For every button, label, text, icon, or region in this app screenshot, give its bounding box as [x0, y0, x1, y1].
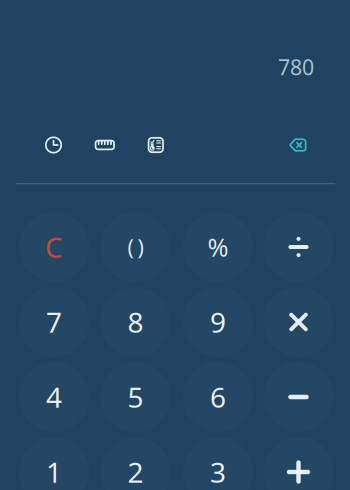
staticText: 7	[46, 303, 62, 341]
staticText: 6	[210, 378, 226, 416]
button[interactable]: 7	[19, 287, 89, 357]
button[interactable]: C	[19, 212, 89, 282]
staticText: 3	[210, 453, 226, 490]
button[interactable]: Multiply	[263, 287, 333, 357]
button[interactable]: 4	[19, 362, 89, 432]
button[interactable]: Formulas	[136, 125, 176, 165]
button[interactable]: 5	[100, 362, 170, 432]
staticText: C	[45, 228, 63, 266]
button[interactable]: ( )	[100, 212, 170, 282]
staticText: 4	[46, 378, 62, 416]
button[interactable]: 9	[183, 287, 253, 357]
staticText: %	[207, 230, 228, 264]
button[interactable]: Plus	[263, 437, 333, 490]
button[interactable]: Backspace	[278, 125, 318, 165]
button[interactable]: History	[33, 125, 73, 165]
button[interactable]: %	[183, 212, 253, 282]
button[interactable]: Unit converter	[85, 125, 125, 165]
staticText: 9	[210, 303, 226, 341]
staticText: 5	[127, 378, 143, 416]
button[interactable]: 2	[100, 437, 170, 490]
staticText: ( )	[127, 233, 143, 261]
staticText: 8	[127, 303, 143, 341]
button[interactable]: Divide	[263, 212, 333, 282]
button[interactable]: 8	[100, 287, 170, 357]
button[interactable]: Minus	[263, 362, 333, 432]
button[interactable]: 3	[183, 437, 253, 490]
button[interactable]: 1	[19, 437, 89, 490]
staticText: 780	[278, 53, 314, 81]
staticText: 2	[127, 453, 143, 490]
button[interactable]: 6	[183, 362, 253, 432]
staticText: 1	[46, 453, 62, 490]
